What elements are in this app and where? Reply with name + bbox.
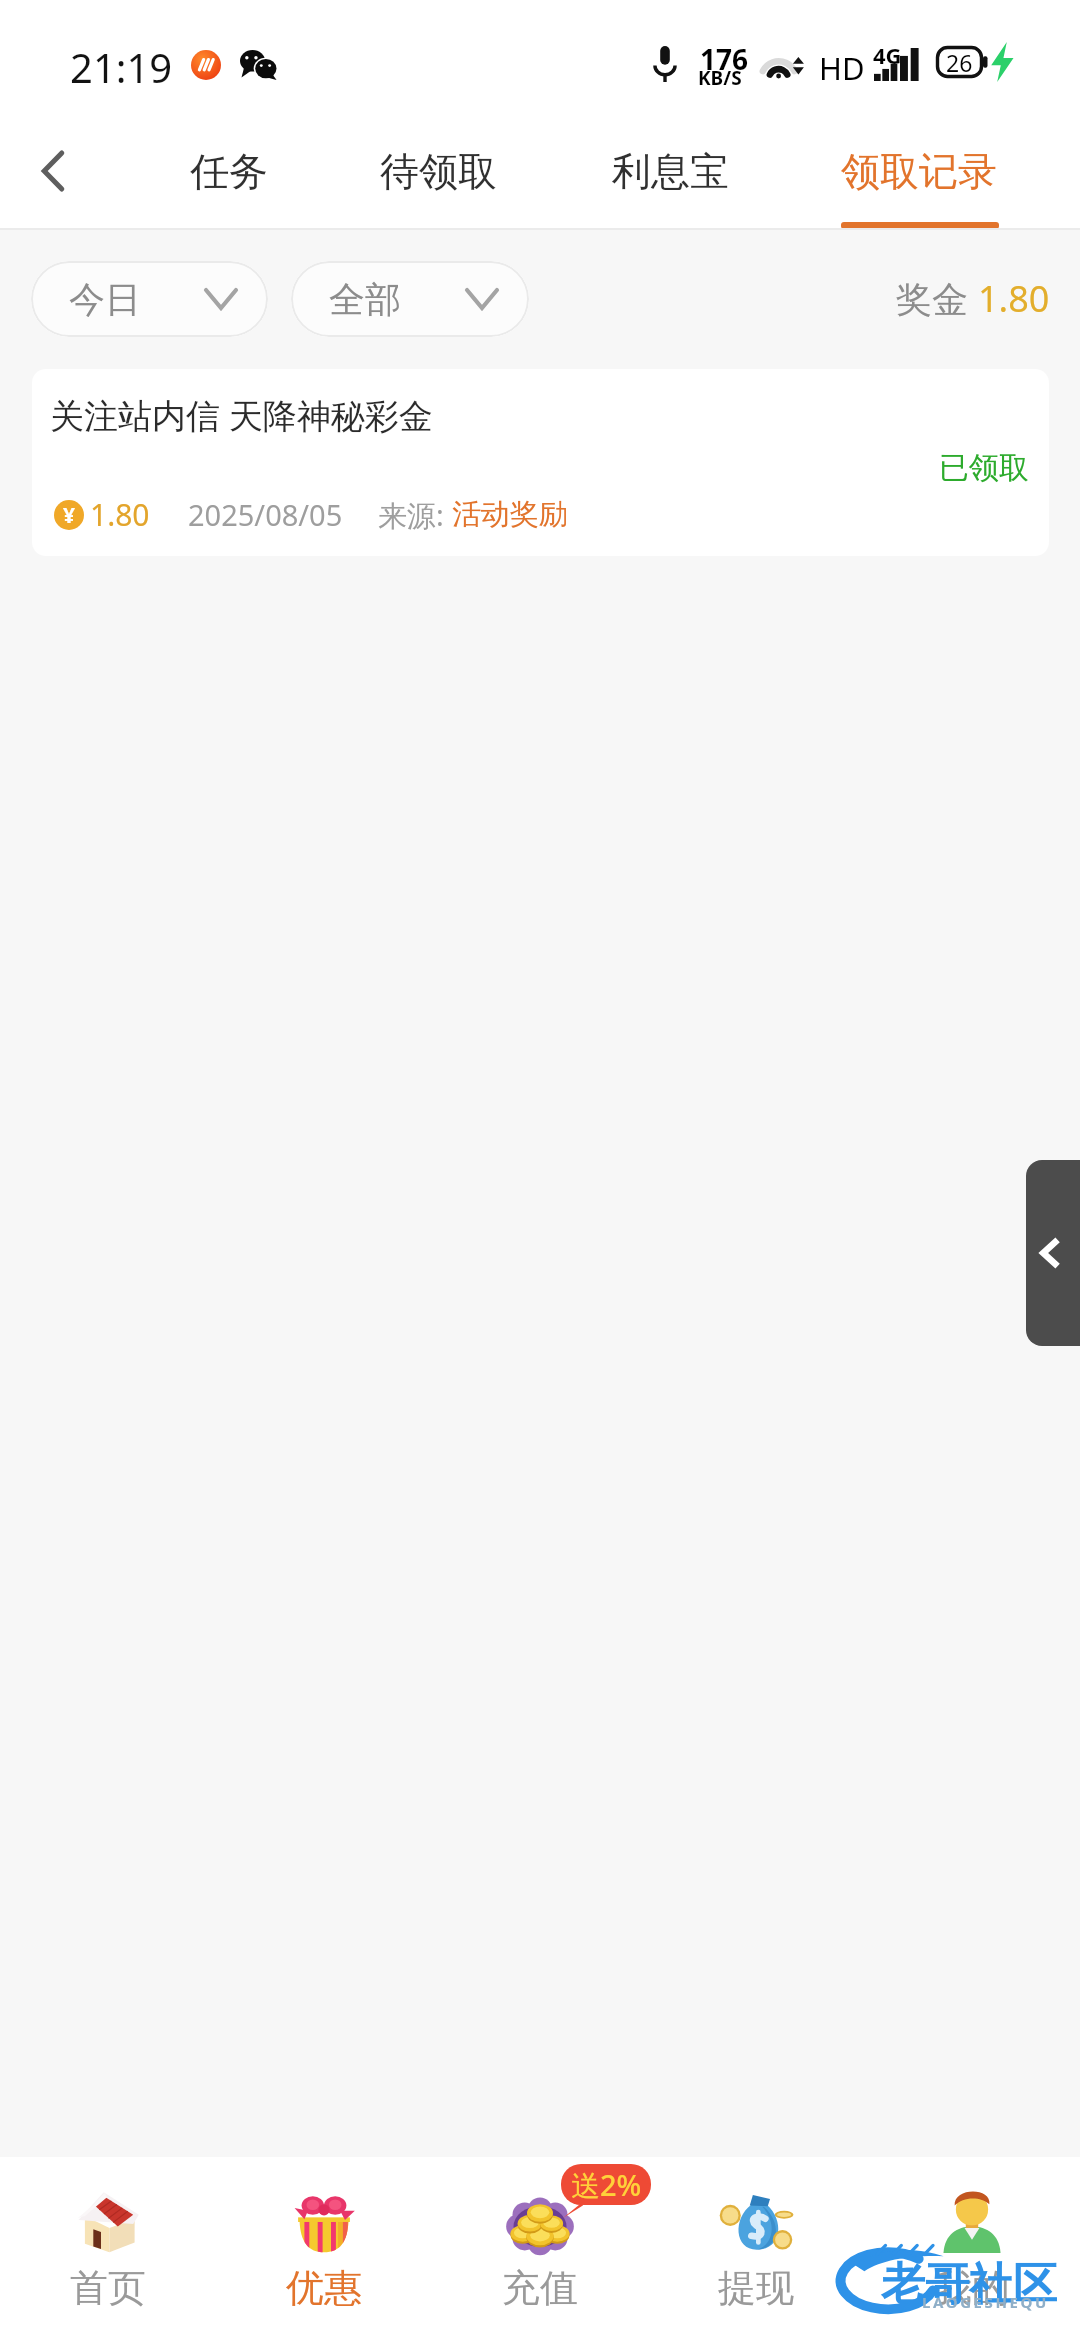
staticText: 奖金 [896,274,978,323]
staticText: 任务 [190,147,268,196]
staticText: 4G [873,40,902,70]
button[interactable]: 首页 [0,2157,216,2340]
staticText: 活动奖励 [452,496,568,533]
button[interactable]: 我的 [864,2157,1080,2340]
staticText: 来源: [378,495,452,535]
staticText: 关注站内信 天降神秘彩金 [50,392,433,438]
button[interactable]: 关注站内信 天降神秘彩金 [32,369,1049,556]
staticText: 176 [700,40,749,78]
button[interactable]: Open side panel [1026,1160,1080,1346]
staticText: 已领取 [939,449,1029,487]
staticText: 待领取 [380,147,497,196]
staticText: 首页 [70,2264,146,2312]
staticText: 21:19 [70,40,173,94]
staticText: ¥ [63,501,76,530]
staticText: 送2% [571,2165,642,2205]
staticText: LAOGESHEQU [922,2292,1049,2312]
staticText: 1.80 [978,274,1050,323]
staticText: 提现 [718,2264,794,2312]
button[interactable]: 优惠 [216,2157,432,2340]
button[interactable]: 充值 [432,2157,648,2340]
staticText: 26 [946,47,973,78]
button[interactable]: Back [10,128,96,214]
button[interactable]: 领取记录 [820,112,1018,230]
staticText: 我的 [934,2264,1010,2312]
staticText: 2025/08/05 [188,495,343,534]
button[interactable]: 全部 [291,261,529,337]
button[interactable]: 利息宝 [591,112,750,230]
staticText: 老哥社区 [881,2257,1057,2312]
staticText: KB/S [698,65,742,91]
staticText: HD [819,47,865,89]
staticText: 充值 [502,2264,578,2312]
button[interactable]: 今日 [31,261,268,337]
staticText: 领取记录 [841,147,997,196]
staticText: 全部 [329,277,401,322]
button[interactable]: 任务 [169,112,289,230]
staticText: 利息宝 [612,147,729,196]
button[interactable]: 待领取 [359,112,518,230]
staticText: 1.80 [90,494,150,535]
staticText: 今日 [69,277,141,322]
button[interactable]: 提现 [648,2157,864,2340]
staticText: 优惠 [286,2264,362,2312]
